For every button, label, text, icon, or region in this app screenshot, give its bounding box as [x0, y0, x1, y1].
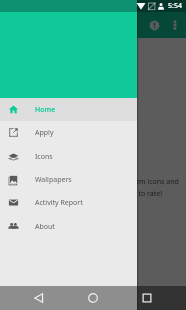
staticText: Home [35, 105, 56, 115]
button[interactable]: New releases [144, 15, 165, 36]
staticText: Icons [35, 152, 53, 162]
button[interactable]: More options [165, 15, 185, 35]
staticText: Apply [35, 128, 54, 138]
staticText: Long press on any icon to request custom… [8, 177, 179, 198]
button[interactable]: Home [0, 98, 137, 121]
staticText: About [35, 222, 55, 232]
button[interactable]: Apply [0, 121, 137, 144]
button[interactable]: Icons [0, 145, 137, 168]
staticText: Wallpapers [35, 175, 72, 185]
button[interactable]: About [0, 215, 137, 238]
staticText: 5:54 [168, 1, 182, 11]
button[interactable]: Wallpapers [0, 168, 137, 191]
button[interactable]: Activity Report [0, 191, 137, 214]
staticText: Activity Report [35, 198, 83, 208]
